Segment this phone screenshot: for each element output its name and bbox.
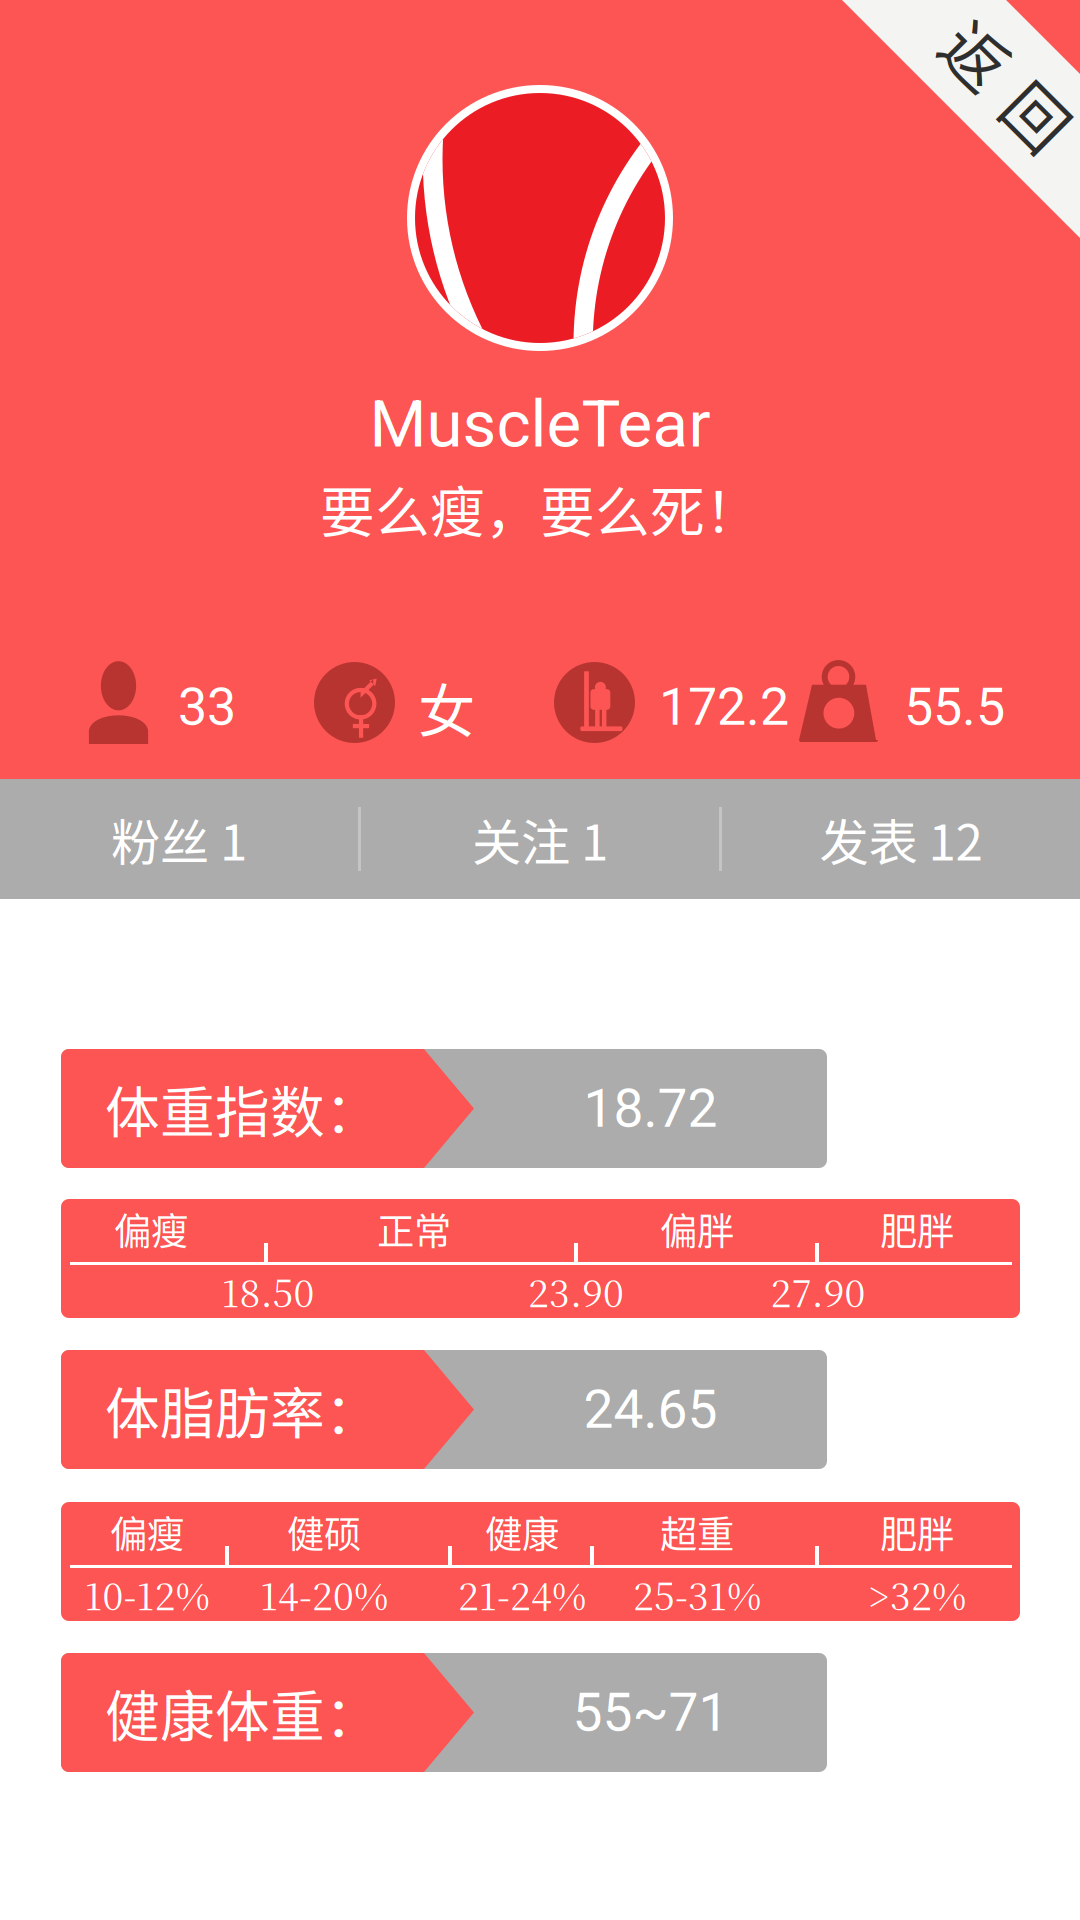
button[interactable]: 关注 1 xyxy=(361,779,719,899)
staticText: 21-24% xyxy=(458,1567,586,1621)
staticText: 23.90 xyxy=(528,1264,624,1318)
staticText: 肥胖 xyxy=(880,1505,954,1559)
staticText: 10-12% xyxy=(84,1567,209,1621)
staticText: 25-31% xyxy=(633,1567,761,1621)
staticText: 18.72 xyxy=(583,1077,717,1140)
staticText: 健康体重： xyxy=(105,1673,380,1752)
staticText: 健康 xyxy=(485,1505,559,1559)
staticText: 27.90 xyxy=(770,1264,865,1318)
staticText: 回 xyxy=(1032,7,1080,99)
staticText: 女 xyxy=(418,665,475,748)
staticText: 粉丝 1 xyxy=(111,803,247,875)
staticText: 14-20% xyxy=(260,1567,388,1621)
button[interactable]: 返回 xyxy=(747,0,1080,111)
staticText: 超重 xyxy=(660,1505,734,1559)
staticText: 33 xyxy=(178,676,236,737)
staticText: 55~71 xyxy=(572,1681,728,1744)
staticText: 返 xyxy=(946,7,1010,99)
staticText: 偏瘦 xyxy=(114,1202,188,1256)
button[interactable]: 发表 12 xyxy=(722,779,1080,899)
button[interactable]: 粉丝 1 xyxy=(0,779,358,899)
staticText: 172.2 xyxy=(659,676,789,737)
staticText: 体脂肪率： xyxy=(105,1370,380,1449)
staticText: 发表 12 xyxy=(819,803,982,875)
staticText: 体重指数： xyxy=(105,1069,380,1148)
staticText: 偏瘦 xyxy=(110,1505,184,1559)
staticText: MuscleTear xyxy=(369,386,710,463)
staticText: 关注 1 xyxy=(472,803,608,875)
staticText: 正常 xyxy=(377,1202,451,1256)
staticText: 偏胖 xyxy=(660,1202,734,1256)
staticText: 健硕 xyxy=(287,1505,361,1559)
staticText: 24.65 xyxy=(583,1378,717,1441)
staticText: 18.50 xyxy=(221,1264,314,1318)
staticText: >32% xyxy=(868,1567,966,1621)
staticText: 55.5 xyxy=(904,676,1005,737)
staticText: 要么瘦，要么死！ xyxy=(320,469,760,548)
staticText: 肥胖 xyxy=(880,1202,954,1256)
